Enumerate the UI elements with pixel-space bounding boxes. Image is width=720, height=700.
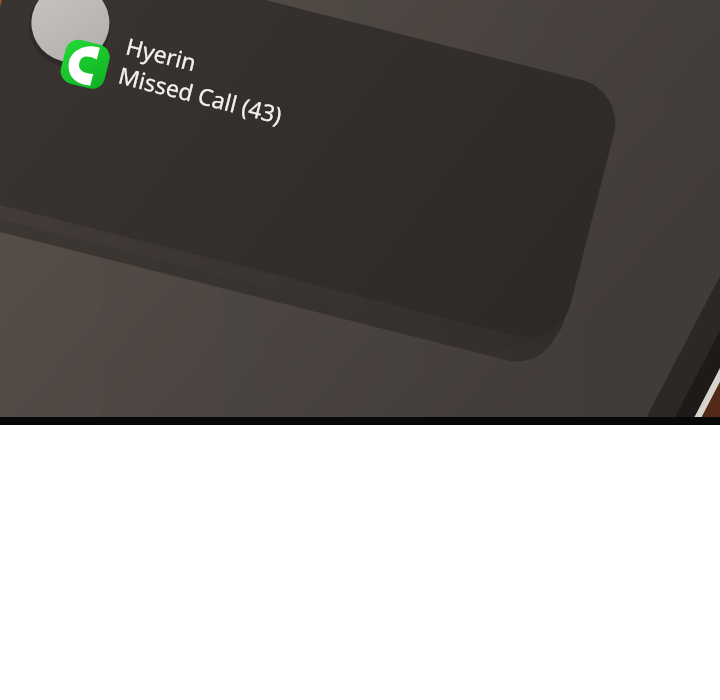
button[interactable]: Missed call notification from Hyerin bbox=[0, 0, 720, 700]
